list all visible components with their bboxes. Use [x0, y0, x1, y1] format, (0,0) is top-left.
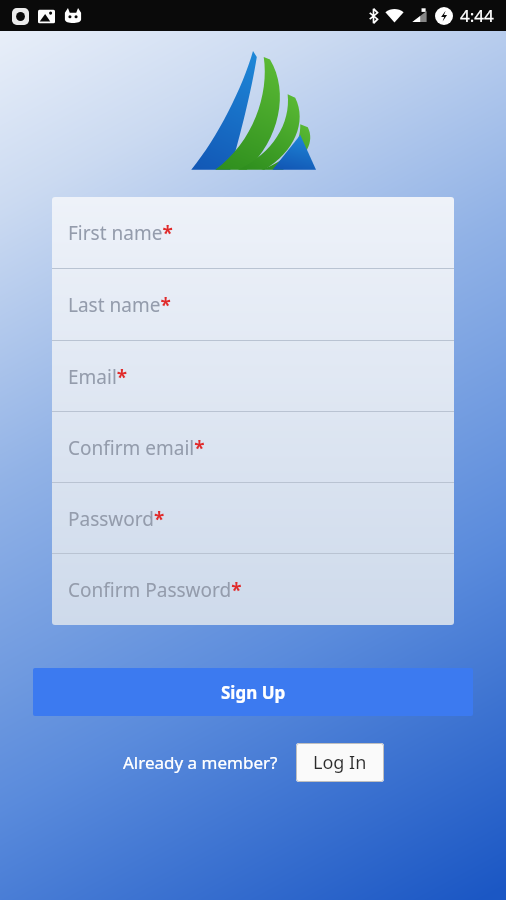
staticText: Email*	[68, 364, 128, 390]
button[interactable]: Password*	[52, 483, 454, 554]
staticText: Password*	[68, 506, 165, 532]
button[interactable]: Log In	[296, 743, 384, 782]
button[interactable]: First name*	[52, 197, 454, 269]
staticText: Already a member?	[123, 751, 278, 774]
button[interactable]: Last name*	[52, 269, 454, 341]
button[interactable]: Confirm Password*	[52, 554, 454, 625]
staticText: Confirm email*	[68, 435, 205, 461]
button[interactable]: Sign Up	[33, 668, 473, 716]
staticText: 4:44	[460, 4, 494, 27]
staticText: First name*	[68, 220, 173, 246]
button[interactable]: Email*	[52, 341, 454, 412]
button[interactable]: Confirm email*	[52, 412, 454, 483]
staticText: Confirm Password*	[68, 577, 242, 603]
staticText: Log In	[313, 750, 367, 775]
staticText: Sign Up	[221, 681, 286, 704]
staticText: Last name*	[68, 292, 171, 318]
